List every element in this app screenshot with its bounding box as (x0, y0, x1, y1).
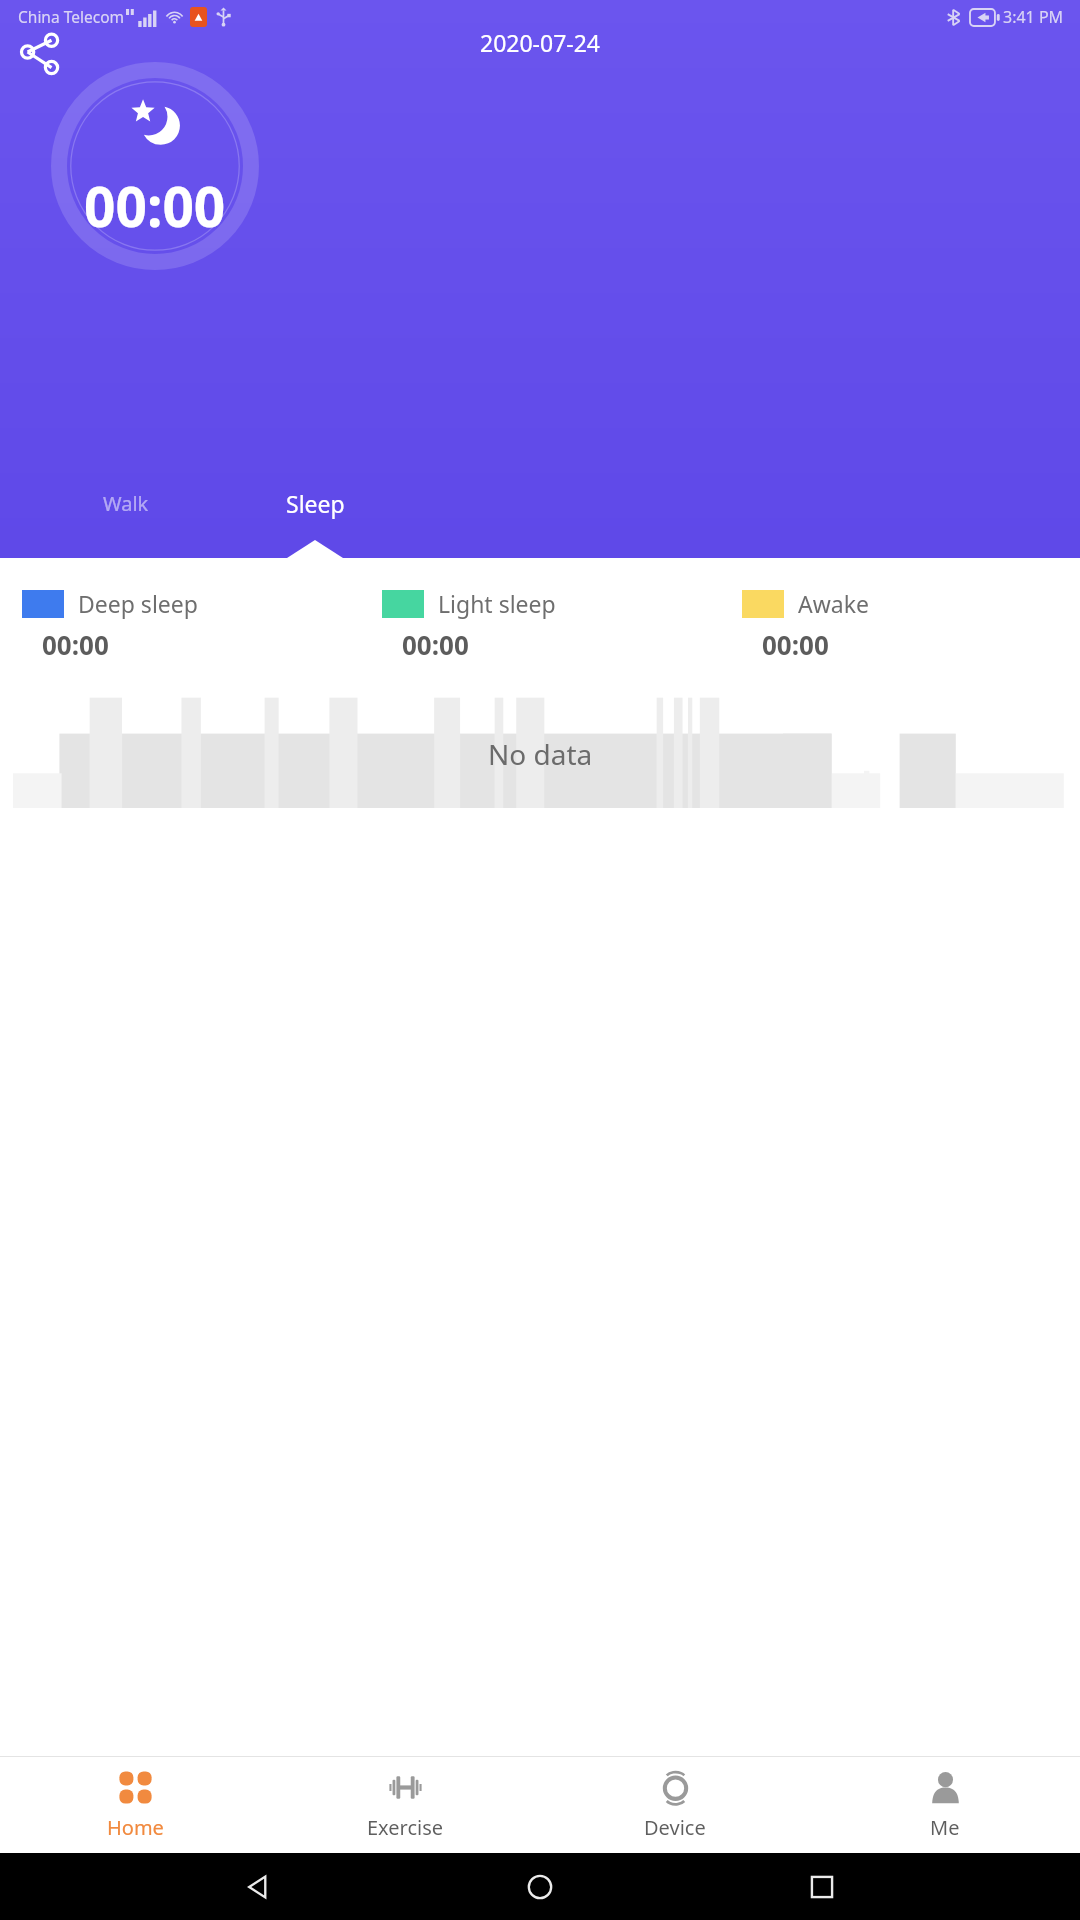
staticText: Deep sleep (78, 588, 198, 619)
button[interactable]: Exercise (270, 1757, 540, 1853)
button[interactable]: Sleep (240, 472, 390, 534)
staticText: 00:00 (762, 627, 1080, 662)
staticText: Sleep (286, 488, 345, 519)
staticText: No data (488, 735, 593, 773)
button[interactable]: Awake (720, 588, 1080, 662)
staticText: Awake (798, 588, 869, 619)
staticText: Exercise (367, 1814, 444, 1841)
button[interactable]: Home (0, 1757, 270, 1853)
staticText: 00:00 (84, 168, 226, 243)
button[interactable]: Me (810, 1757, 1080, 1853)
button[interactable]: Back (234, 1863, 282, 1911)
button[interactable]: Deep sleep (0, 588, 360, 662)
staticText: 00:00 (402, 627, 720, 662)
button[interactable]: Recent apps (798, 1863, 846, 1911)
staticText: 00:00 (42, 627, 360, 662)
staticText: Light sleep (438, 588, 556, 619)
staticText: Me (930, 1814, 960, 1841)
button[interactable]: 00:00 (51, 62, 259, 270)
staticText: Device (644, 1814, 706, 1841)
button[interactable]: Device (540, 1757, 810, 1853)
button[interactable]: Home (516, 1863, 564, 1911)
staticText: 2020-07-24 (0, 27, 1080, 58)
button[interactable]: Light sleep (360, 588, 720, 662)
staticText: Home (107, 1814, 164, 1841)
staticText: Walk (103, 490, 149, 517)
staticText: China Telecom (18, 6, 125, 27)
button[interactable]: Walk (36, 472, 216, 534)
button[interactable]: Share (12, 26, 64, 78)
staticText: 3:41 PM (1003, 6, 1064, 28)
